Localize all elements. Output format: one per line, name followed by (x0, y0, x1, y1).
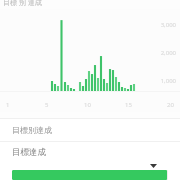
staticText: 5 (45, 101, 49, 109)
staticText: 3,000 (154, 21, 176, 29)
staticText: 1,000 (154, 77, 176, 85)
staticText: 15 (125, 101, 132, 109)
staticText: 1 (6, 101, 10, 109)
staticText: 20 (167, 101, 174, 109)
staticText: 10 (84, 101, 91, 109)
staticText: 目標別達成 (12, 125, 52, 135)
button[interactable] (12, 170, 168, 180)
button[interactable]: Expand (148, 162, 158, 169)
staticText: 目標 別 達成 (3, 0, 42, 7)
button[interactable]: 目標別達成 (0, 119, 180, 141)
button[interactable]: 目標達成 (0, 142, 180, 162)
staticText: 2,000 (154, 49, 176, 57)
staticText: 目標達成 (12, 147, 46, 158)
